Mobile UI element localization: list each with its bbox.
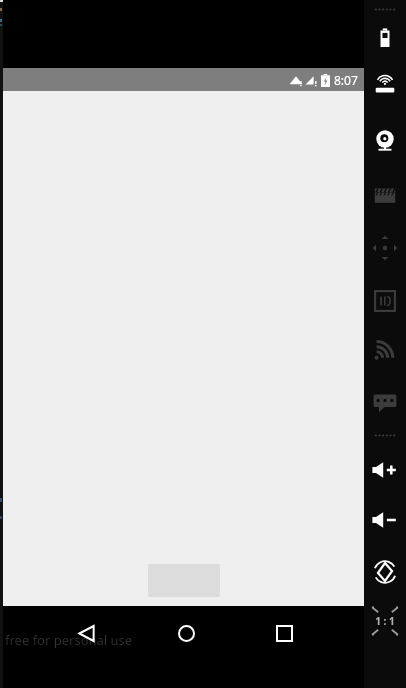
button[interactable]: Power xyxy=(367,18,403,58)
button[interactable]: Rotate xyxy=(367,552,403,592)
button[interactable]: Recent apps xyxy=(261,610,307,656)
button[interactable]: D-pad xyxy=(367,228,403,268)
staticText: 8:07 xyxy=(334,72,358,88)
staticText: free for personal use xyxy=(5,631,133,649)
button[interactable]: Volume up xyxy=(367,450,403,490)
button[interactable]: Record screen xyxy=(367,175,403,215)
button[interactable]: Device ID xyxy=(367,281,403,321)
button[interactable]: Messages xyxy=(367,382,403,422)
button[interactable]: Home xyxy=(163,610,209,656)
button[interactable]: Zoom 1 to 1 xyxy=(368,602,402,640)
button[interactable]: GPS xyxy=(367,66,403,106)
button[interactable]: Webcam xyxy=(367,122,403,162)
button[interactable]: Cellular xyxy=(367,330,403,370)
staticText: 1 : 1 xyxy=(375,614,395,628)
button[interactable]: Volume down xyxy=(367,500,403,540)
button[interactable]: Back xyxy=(63,610,109,656)
